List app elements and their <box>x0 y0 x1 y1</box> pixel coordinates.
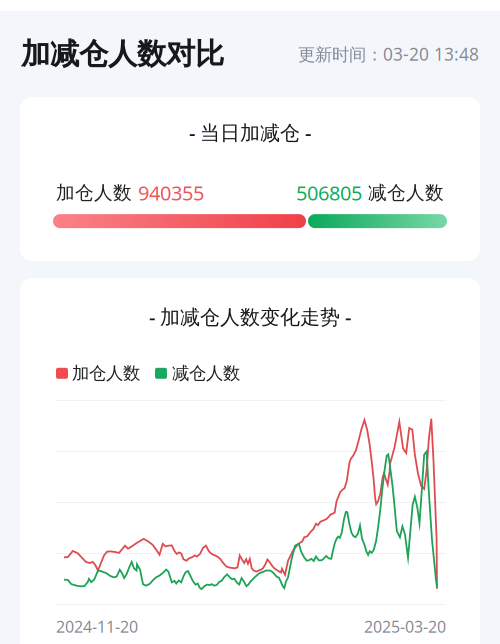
staticText: - 当日加减仓 - <box>189 119 311 146</box>
staticText: 更新时间：03-20 13:48 <box>298 42 479 65</box>
staticText: 940355 <box>138 180 204 206</box>
staticText: 2024-11-20 <box>56 616 138 637</box>
staticText: 加减仓人数对比 <box>21 36 224 72</box>
staticText: 加仓人数 <box>56 181 138 204</box>
staticText: - 加减仓人数变化走势 - <box>149 303 351 330</box>
staticText: 减仓人数 <box>172 363 240 384</box>
staticText: 506805 <box>296 180 362 206</box>
staticText: 2025-03-20 <box>364 616 446 637</box>
staticText: 减仓人数 <box>362 181 444 204</box>
staticText: 加仓人数 <box>72 363 140 384</box>
